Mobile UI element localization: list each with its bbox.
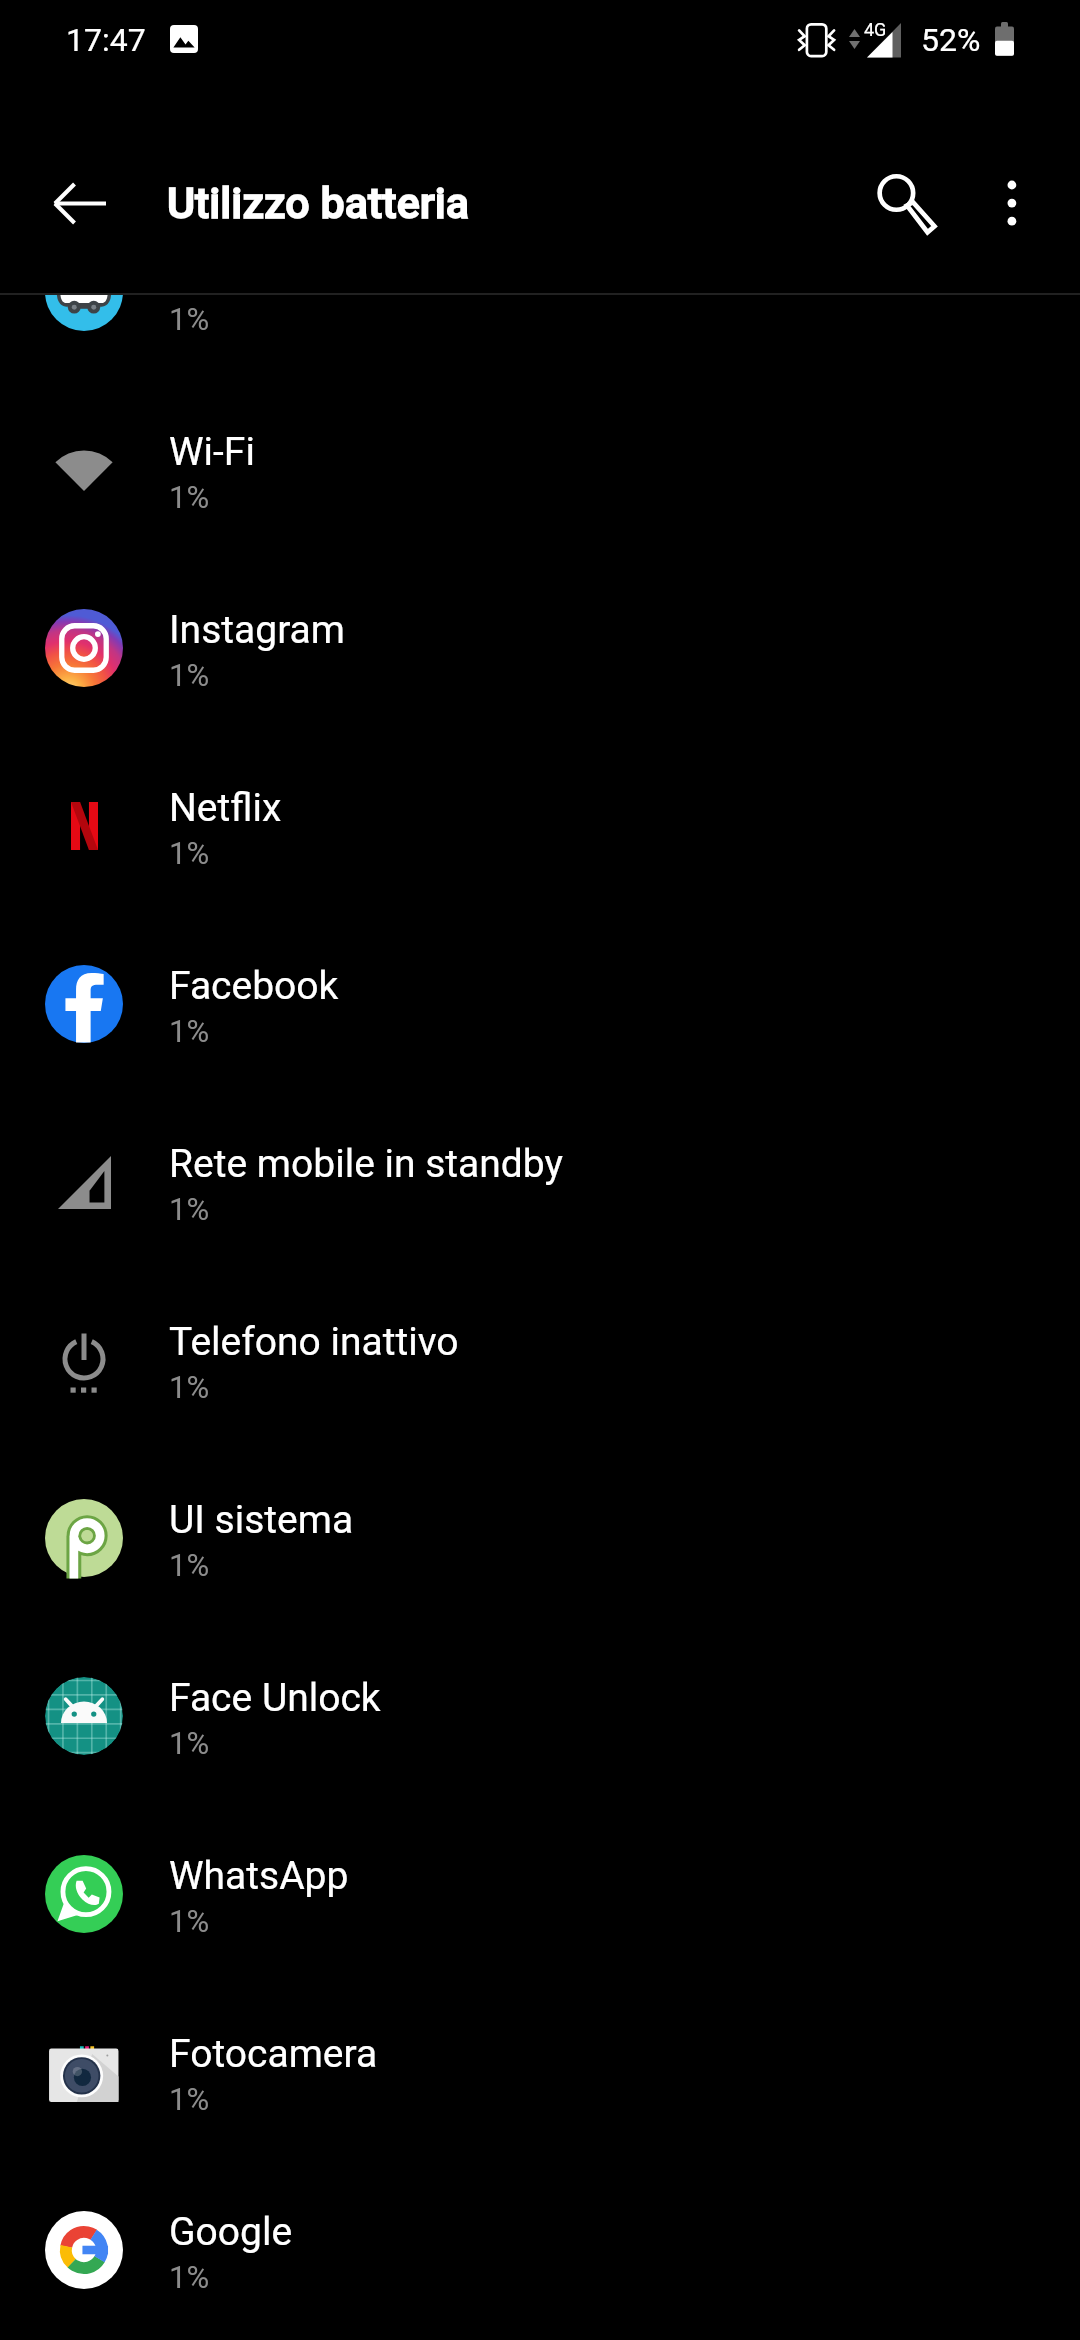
- staticText: 1%: [169, 2081, 210, 2117]
- button[interactable]: Indietro: [34, 156, 130, 252]
- staticText: 1%: [169, 479, 210, 515]
- staticText: Telefono inattivo: [169, 1319, 459, 1365]
- staticText: Fotocamera: [169, 2031, 378, 2077]
- staticText: 1%: [169, 1903, 210, 1939]
- button[interactable]: Google: [0, 2161, 1080, 2339]
- staticText: Face Unlock: [169, 1675, 381, 1721]
- staticText: 1%: [169, 657, 210, 693]
- staticText: Netflix: [169, 785, 282, 831]
- staticText: 1%: [169, 1725, 210, 1761]
- staticText: 1%: [169, 1369, 210, 1405]
- staticText: 1%: [169, 835, 210, 871]
- staticText: 52%: [921, 21, 981, 59]
- button[interactable]: Netflix: [0, 737, 1080, 915]
- button[interactable]: Instagram: [0, 559, 1080, 737]
- staticText: Facebook: [169, 963, 339, 1009]
- button[interactable]: Rete mobile in standby: [0, 1093, 1080, 1271]
- button[interactable]: Telefono inattivo: [0, 1271, 1080, 1449]
- button[interactable]: Altre opzioni: [964, 155, 1060, 251]
- staticText: 17:47: [66, 21, 146, 59]
- staticText: Wi-Fi: [169, 429, 255, 475]
- button[interactable]: Facebook: [0, 915, 1080, 1093]
- staticText: 4G: [864, 19, 887, 40]
- button[interactable]: WhatsApp: [0, 1805, 1080, 1983]
- button[interactable]: Fotocamera: [0, 1983, 1080, 2161]
- button[interactable]: Cerca: [861, 161, 957, 257]
- staticText: WhatsApp: [169, 1853, 349, 1899]
- staticText: Instagram: [169, 607, 346, 653]
- staticText: Utilizzo batteria: [167, 178, 470, 228]
- staticText: 1%: [169, 1191, 210, 1227]
- button[interactable]: Wi-Fi: [0, 381, 1080, 559]
- staticText: 1%: [169, 301, 210, 337]
- staticText: 1%: [169, 2259, 210, 2295]
- button[interactable]: 1%: [0, 295, 1080, 384]
- staticText: Google: [169, 2209, 293, 2255]
- staticText: Rete mobile in standby: [169, 1141, 563, 1187]
- staticText: UI sistema: [169, 1497, 354, 1543]
- staticText: 1%: [169, 1013, 210, 1049]
- button[interactable]: UI sistema: [0, 1449, 1080, 1627]
- staticText: 1%: [169, 1547, 210, 1583]
- button[interactable]: Face Unlock: [0, 1627, 1080, 1805]
